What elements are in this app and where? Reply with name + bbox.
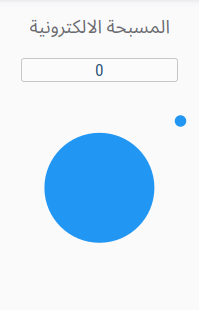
button[interactable]: Count tasbih	[44, 133, 154, 243]
staticText: 0	[95, 60, 104, 80]
button[interactable]: Reset	[175, 115, 186, 127]
staticText: المسبحة الالكترونية	[29, 7, 169, 47]
button[interactable]: Count	[21, 58, 177, 81]
